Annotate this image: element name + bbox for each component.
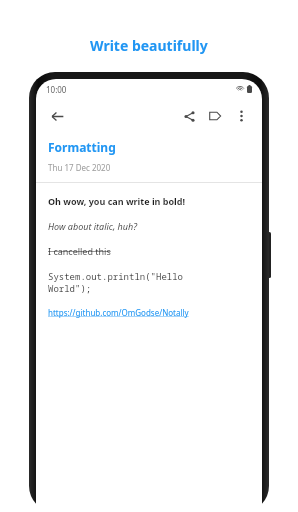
staticText: 10:00 [46,84,67,95]
button[interactable]: Labels [202,103,228,129]
staticText: System.out.println("Hello World"); [48,270,196,295]
button[interactable]: https://github.com/OmGodse/Notally [48,307,189,318]
staticText: Formatting [48,139,116,155]
button[interactable]: Back [44,103,70,129]
staticText: How about italic, huh? [48,220,138,232]
staticText: Oh wow, you can write in bold! [48,195,186,207]
staticText: Thu 17 Dec 2020 [48,162,111,173]
staticText: Write beautifully [90,36,208,55]
staticText: I cancelled this [48,245,111,257]
button[interactable]: Share [176,103,202,129]
button[interactable]: More options [228,103,254,129]
